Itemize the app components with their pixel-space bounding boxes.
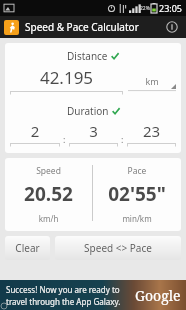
button[interactable]: Speed bbox=[5, 165, 92, 224]
staticText: 02'55" bbox=[93, 181, 181, 207]
button[interactable]: Clear bbox=[5, 236, 50, 260]
staticText: 3 bbox=[69, 121, 118, 141]
button[interactable]: Pace bbox=[93, 165, 181, 224]
staticText: 2 bbox=[10, 121, 60, 141]
button[interactable]: 42.195 bbox=[10, 66, 123, 95]
staticText: km bbox=[128, 75, 176, 87]
staticText: 42.195 bbox=[10, 66, 123, 89]
staticText: Success! Now you are ready to bbox=[6, 284, 120, 295]
staticText: travel through the App Galaxy. bbox=[6, 296, 121, 307]
staticText: Duration bbox=[67, 104, 109, 118]
staticText: Clear bbox=[5, 241, 50, 255]
staticText: Distance bbox=[67, 49, 108, 63]
button[interactable]: Speed <> Pace bbox=[55, 236, 181, 260]
button[interactable]: Advertisement bbox=[0, 280, 186, 310]
staticText: 23:05 bbox=[159, 2, 183, 14]
button[interactable]: 23 bbox=[127, 121, 176, 147]
staticText: 22% bbox=[140, 5, 150, 12]
staticText: min/km bbox=[93, 213, 181, 224]
button[interactable]: 2 bbox=[10, 121, 60, 147]
button[interactable] bbox=[4, 20, 19, 35]
staticText: Speed <> Pace bbox=[55, 241, 181, 255]
staticText: 20.52 bbox=[5, 181, 92, 207]
button[interactable]: 3 bbox=[69, 121, 118, 147]
button[interactable]: Info bbox=[162, 17, 182, 37]
button[interactable]: km bbox=[128, 75, 176, 95]
staticText: km/h bbox=[5, 213, 92, 224]
staticText: Pace bbox=[93, 165, 181, 177]
staticText: Speed bbox=[5, 165, 92, 177]
staticText: 23 bbox=[127, 121, 176, 141]
staticText: Google bbox=[135, 286, 181, 305]
staticText: : bbox=[121, 133, 124, 145]
staticText: Speed & Pace Calculator bbox=[25, 20, 139, 34]
staticText: : bbox=[63, 133, 66, 145]
